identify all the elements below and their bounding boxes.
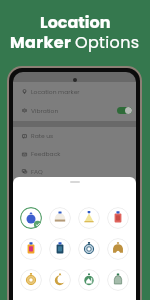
staticText: FAQ bbox=[31, 168, 43, 176]
button[interactable]: Marker style 3 bbox=[78, 207, 100, 229]
button[interactable]: Marker style 10 bbox=[49, 269, 71, 291]
button[interactable]: Location marker bbox=[13, 82, 136, 101]
button[interactable]: Marker style 2 bbox=[49, 207, 71, 229]
button[interactable]: Marker style 8 bbox=[107, 238, 129, 260]
button[interactable]: Feedback bbox=[13, 145, 136, 163]
button[interactable]: Vibration bbox=[13, 101, 136, 120]
staticText: Vibration bbox=[31, 107, 59, 115]
button[interactable]: Marker style 4 bbox=[107, 207, 129, 229]
staticText: Location marker bbox=[31, 88, 80, 96]
button[interactable]: Marker style 6 bbox=[49, 238, 71, 260]
button[interactable]: FAQ bbox=[13, 163, 136, 180]
button[interactable]: Marker style 1 bbox=[20, 207, 42, 229]
button[interactable]: Marker style 12 bbox=[107, 269, 129, 291]
button[interactable]: Rate us bbox=[13, 127, 136, 145]
button[interactable]: Marker style 11 bbox=[78, 269, 100, 291]
staticText: Rate us bbox=[31, 132, 54, 140]
button[interactable]: Marker style 5 bbox=[20, 238, 42, 260]
staticText: Options bbox=[75, 31, 140, 53]
staticText: Marker bbox=[10, 31, 75, 53]
button[interactable]: Marker style 7 bbox=[78, 238, 100, 260]
staticText: Feedback bbox=[31, 150, 61, 158]
staticText: Location bbox=[40, 11, 111, 33]
button[interactable]: Marker style 9 bbox=[20, 269, 42, 291]
